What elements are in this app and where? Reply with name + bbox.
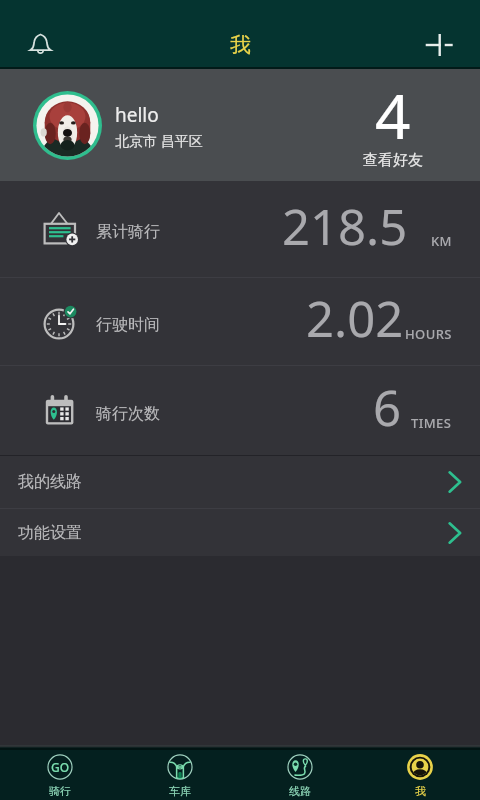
staticText: HOURS: [405, 325, 452, 343]
staticText: 累计骑行: [96, 222, 160, 242]
staticText: 4: [375, 73, 411, 157]
staticText: 车库: [169, 784, 191, 798]
staticText: KM: [431, 232, 452, 250]
staticText: 我: [415, 784, 426, 798]
staticText: 218.5: [282, 193, 408, 260]
button[interactable]: Notifications: [15, 20, 65, 69]
staticText: hello: [115, 102, 159, 128]
button[interactable]: hello: [0, 69, 480, 181]
staticText: 骑行: [49, 784, 71, 798]
staticText: 我的线路: [18, 472, 82, 492]
staticText: 我: [230, 32, 251, 58]
staticText: 线路: [289, 784, 311, 798]
button[interactable]: 骑行次数: [0, 366, 480, 455]
button[interactable]: 累计骑行: [0, 181, 480, 277]
button[interactable]: 功能设置: [0, 509, 480, 556]
staticText: 骑行次数: [96, 404, 160, 424]
button[interactable]: 行驶时间: [0, 278, 480, 365]
staticText: 功能设置: [18, 523, 82, 543]
staticText: 6: [373, 374, 402, 441]
button[interactable]: 线路: [240, 750, 360, 800]
button[interactable]: Add: [415, 20, 465, 69]
staticText: 北京市 昌平区: [115, 131, 203, 150]
staticText: 2.02: [306, 285, 404, 352]
staticText: TIMES: [411, 414, 452, 432]
button[interactable]: 车库: [120, 750, 240, 800]
staticText: GO: [51, 759, 70, 775]
staticText: 行驶时间: [96, 315, 160, 335]
button[interactable]: 我: [360, 750, 480, 800]
button[interactable]: 我的线路: [0, 456, 480, 508]
button[interactable]: 4: [355, 73, 431, 176]
button[interactable]: GO: [0, 750, 120, 800]
staticText: 查看好友: [363, 151, 423, 170]
